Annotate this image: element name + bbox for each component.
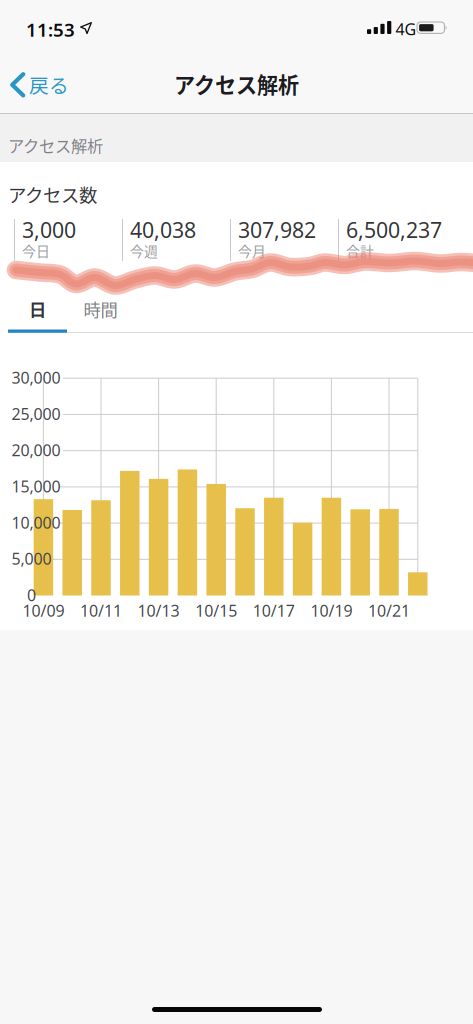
staticText: 今月 xyxy=(238,240,266,261)
staticText: 15,000 xyxy=(11,476,60,497)
staticText: 4G xyxy=(395,18,416,40)
staticText: 10/13 xyxy=(138,600,180,621)
staticText: 20,000 xyxy=(11,439,60,461)
staticText: 10/09 xyxy=(22,600,64,621)
staticText: 時間 xyxy=(83,296,117,322)
staticText: 10,000 xyxy=(11,512,60,533)
staticText: 今週 xyxy=(130,240,158,261)
staticText: 10/15 xyxy=(195,600,237,621)
staticText: 30,000 xyxy=(11,367,60,388)
staticText: 10/17 xyxy=(253,600,295,621)
button[interactable]: 戻る xyxy=(10,69,69,99)
staticText: 戻る xyxy=(29,70,69,99)
staticText: アクセス解析 xyxy=(8,133,103,157)
staticText: 5,000 xyxy=(11,548,51,569)
staticText: アクセス数 xyxy=(8,181,97,208)
button[interactable]: 日 xyxy=(8,296,67,333)
staticText: 10/21 xyxy=(368,600,410,621)
staticText: 25,000 xyxy=(11,403,60,424)
staticText: 10/11 xyxy=(80,600,122,621)
staticText: 日 xyxy=(29,296,46,322)
staticText: 10/19 xyxy=(310,600,352,621)
staticText: 合計 xyxy=(346,240,374,261)
staticText: 今日 xyxy=(22,240,50,261)
staticText: 307,982 xyxy=(238,215,316,244)
staticText: 0 xyxy=(27,584,36,606)
button[interactable]: 時間 xyxy=(64,290,137,327)
staticText: アクセス解析 xyxy=(174,68,299,99)
staticText: 40,038 xyxy=(130,215,196,244)
staticText: 6,500,237 xyxy=(346,215,442,244)
staticText: 3,000 xyxy=(22,215,76,244)
staticText: 11:53 xyxy=(26,17,75,42)
